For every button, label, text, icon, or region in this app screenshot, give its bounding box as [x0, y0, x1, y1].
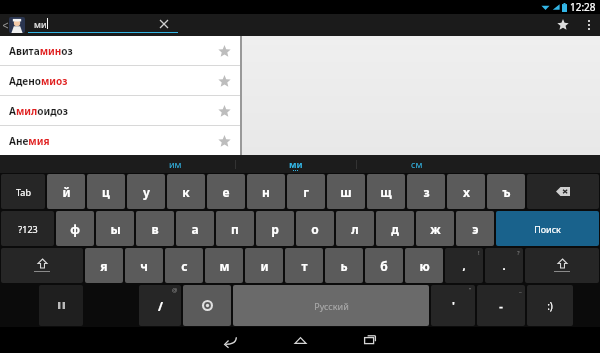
staticText: ь — [340, 258, 348, 274]
staticText: ?123 — [18, 223, 38, 235]
button[interactable]: ш — [327, 174, 365, 209]
button[interactable]: ж — [416, 211, 454, 246]
button[interactable]: ?123 — [1, 211, 54, 246]
staticText: т — [301, 258, 308, 274]
staticText: ! — [478, 249, 480, 257]
staticText: ' — [452, 298, 455, 313]
button[interactable]: им — [115, 155, 235, 173]
staticText: ъ — [502, 184, 511, 200]
button[interactable]: Аденомиоз — [0, 66, 240, 95]
button[interactable]: р — [256, 211, 294, 246]
button[interactable]: о — [296, 211, 334, 246]
staticText: г — [303, 184, 309, 200]
button[interactable]: Амилоидоз — [0, 96, 240, 125]
button[interactable]: Recent apps — [335, 327, 405, 353]
button[interactable]: :) — [527, 285, 573, 326]
staticText: 12:28 — [570, 0, 596, 14]
button[interactable]: ч — [125, 248, 163, 283]
button[interactable]: в — [136, 211, 174, 246]
button[interactable]: ц — [87, 174, 125, 209]
button[interactable]: х — [447, 174, 485, 209]
staticText: / — [158, 298, 163, 314]
button[interactable]: - — [477, 285, 525, 326]
staticText: @ — [172, 286, 178, 294]
button[interactable]: Settings — [39, 285, 83, 326]
button[interactable]: е — [207, 174, 245, 209]
staticText: Поиск — [534, 223, 561, 235]
staticText: ф — [70, 221, 80, 237]
staticText: з — [423, 184, 430, 200]
button[interactable]: Поиск — [496, 211, 599, 246]
staticText: н — [262, 184, 270, 200]
staticText: м — [219, 258, 230, 274]
staticText: ц — [102, 184, 110, 200]
button[interactable]: м — [205, 248, 243, 283]
button[interactable]: н — [247, 174, 285, 209]
button[interactable]: к — [167, 174, 205, 209]
staticText: у — [143, 184, 150, 200]
button[interactable]: Favorite — [214, 41, 234, 61]
button[interactable]: ' — [431, 285, 475, 326]
button[interactable]: ми — [236, 155, 356, 173]
button[interactable]: Анемия — [0, 126, 240, 155]
staticText: Tab — [16, 186, 31, 198]
button[interactable]: More options — [578, 14, 600, 36]
staticText: о — [311, 221, 319, 237]
button[interactable]: д — [376, 211, 414, 246]
staticText: _ — [519, 286, 522, 294]
staticText: ми — [289, 158, 303, 170]
button[interactable]: у — [127, 174, 165, 209]
button[interactable]: Language — [183, 285, 231, 326]
button[interactable]: Clear — [158, 18, 170, 30]
staticText: п — [231, 221, 239, 237]
button[interactable]: п — [216, 211, 254, 246]
staticText: :) — [547, 299, 553, 313]
button[interactable]: ы — [96, 211, 134, 246]
staticText: д — [391, 221, 399, 237]
staticText: ми — [34, 18, 47, 30]
button[interactable]: щ — [367, 174, 405, 209]
button[interactable]: , — [445, 248, 483, 283]
staticText: . — [502, 258, 506, 273]
button[interactable]: Backspace — [527, 174, 599, 209]
button[interactable]: ю — [405, 248, 443, 283]
button[interactable]: Shift — [1, 248, 83, 283]
button[interactable]: б — [365, 248, 403, 283]
button[interactable]: з — [407, 174, 445, 209]
button[interactable]: ъ — [487, 174, 525, 209]
button[interactable]: Shift — [525, 248, 599, 283]
staticText: с — [181, 258, 188, 274]
button[interactable]: Home — [265, 327, 335, 353]
staticText: л — [351, 221, 359, 237]
button[interactable]: э — [456, 211, 494, 246]
button[interactable]: т — [285, 248, 323, 283]
button[interactable]: Favorite — [214, 131, 234, 151]
button[interactable]: Tab — [1, 174, 45, 209]
button[interactable]: / — [139, 285, 181, 326]
button[interactable]: и — [245, 248, 283, 283]
staticText: см — [411, 158, 423, 170]
button[interactable]: й — [47, 174, 85, 209]
staticText: ы — [110, 221, 121, 237]
button[interactable]: . — [485, 248, 523, 283]
button[interactable]: Favorite — [214, 71, 234, 91]
button[interactable]: Favorites — [548, 14, 578, 36]
button[interactable]: ми — [28, 14, 178, 36]
button[interactable]: л — [336, 211, 374, 246]
button[interactable]: я — [85, 248, 123, 283]
button[interactable]: а — [176, 211, 214, 246]
button[interactable]: Navigate up — [0, 14, 28, 36]
button[interactable]: Русский — [233, 285, 429, 326]
staticText: Русский — [314, 300, 349, 312]
button[interactable]: см — [357, 155, 477, 173]
staticText: , — [462, 258, 466, 273]
button[interactable]: ь — [325, 248, 363, 283]
button[interactable]: Back — [195, 327, 265, 353]
button[interactable]: г — [287, 174, 325, 209]
button[interactable]: ф — [56, 211, 94, 246]
button[interactable]: Авитаминоз — [0, 36, 240, 65]
staticText: ш — [340, 184, 352, 200]
staticText: э — [472, 221, 479, 237]
button[interactable]: с — [165, 248, 203, 283]
button[interactable]: Favorite — [214, 101, 234, 121]
